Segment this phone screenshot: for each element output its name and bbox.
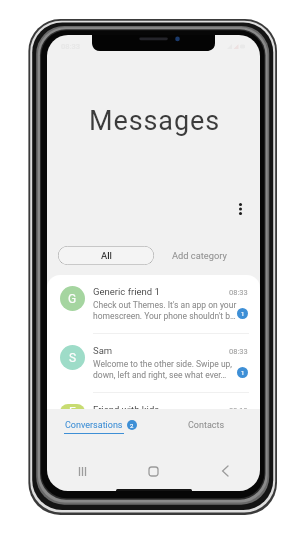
button[interactable]: Add category bbox=[172, 246, 227, 265]
staticText: Welcome to the other side. Swipe up, bbox=[93, 359, 233, 369]
staticText: 08:33 bbox=[229, 288, 248, 297]
button[interactable]: Contacts bbox=[153, 420, 260, 444]
staticText: G bbox=[68, 292, 77, 306]
button[interactable]: All bbox=[58, 246, 154, 265]
staticText: Generic friend 1 bbox=[93, 286, 160, 297]
staticText: Check out Themes. It's an app on your bbox=[93, 300, 237, 310]
button[interactable]: More options bbox=[228, 196, 253, 221]
button[interactable]: Conversations bbox=[47, 420, 153, 444]
button[interactable]: F bbox=[47, 393, 260, 409]
staticText: homescreen. Your phone shouldn't b… bbox=[93, 311, 236, 321]
staticText: Messages bbox=[89, 105, 221, 137]
staticText: 1 bbox=[241, 369, 245, 376]
staticText: Contacts bbox=[188, 420, 225, 431]
staticText: S bbox=[69, 351, 77, 365]
button[interactable]: Home bbox=[118, 455, 189, 487]
staticText: F bbox=[69, 405, 76, 409]
button[interactable]: Recents bbox=[47, 455, 118, 487]
button[interactable]: S bbox=[47, 334, 260, 392]
button[interactable]: Back bbox=[189, 455, 260, 487]
staticText: All bbox=[101, 250, 112, 261]
staticText: Sam bbox=[93, 345, 113, 356]
staticText: 08:33 bbox=[229, 347, 248, 356]
staticText: Conversations bbox=[65, 420, 123, 431]
staticText: 09:19 bbox=[229, 406, 248, 409]
staticText: Friend with kids bbox=[93, 404, 160, 409]
staticText: 2 bbox=[130, 422, 134, 429]
staticText: 08:33 bbox=[61, 42, 81, 51]
staticText: Add category bbox=[172, 250, 227, 261]
staticText: down, left and right, see what ever… bbox=[93, 370, 227, 380]
staticText: 1 bbox=[241, 310, 245, 317]
button[interactable]: G bbox=[47, 275, 260, 333]
